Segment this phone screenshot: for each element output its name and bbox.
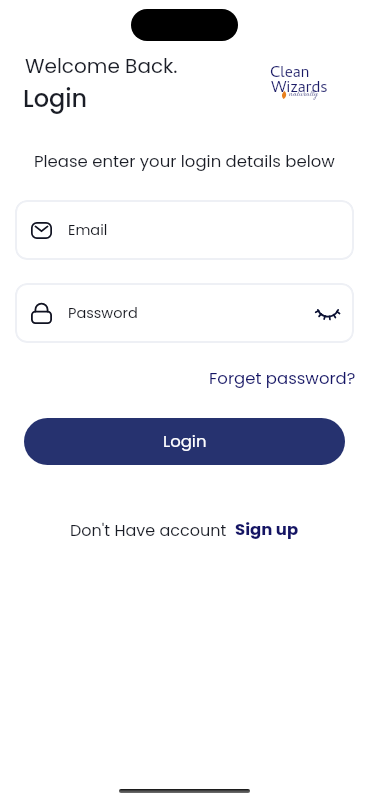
staticText: Please enter your login details below: [34, 150, 335, 173]
button[interactable]: Show password: [315, 300, 341, 326]
button[interactable]: Login: [24, 418, 345, 465]
staticText: Don't Have account: [70, 519, 227, 541]
staticText: Welcome Back.: [25, 52, 178, 80]
button[interactable]: Password: [15, 283, 354, 343]
button[interactable]: Email: [15, 200, 354, 260]
staticText: naturally: [289, 89, 318, 100]
button[interactable]: Sign up: [235, 518, 299, 541]
staticText: Email: [68, 220, 108, 240]
staticText: Login: [163, 430, 207, 453]
staticText: Password: [68, 303, 138, 323]
staticText: Login: [23, 82, 88, 116]
button[interactable]: Forget password?: [205, 365, 360, 392]
staticText: Clean: [270, 61, 310, 87]
staticText: Wizards: [271, 76, 328, 102]
staticText: Sign up: [235, 518, 299, 541]
staticText: Forget password?: [209, 367, 356, 390]
